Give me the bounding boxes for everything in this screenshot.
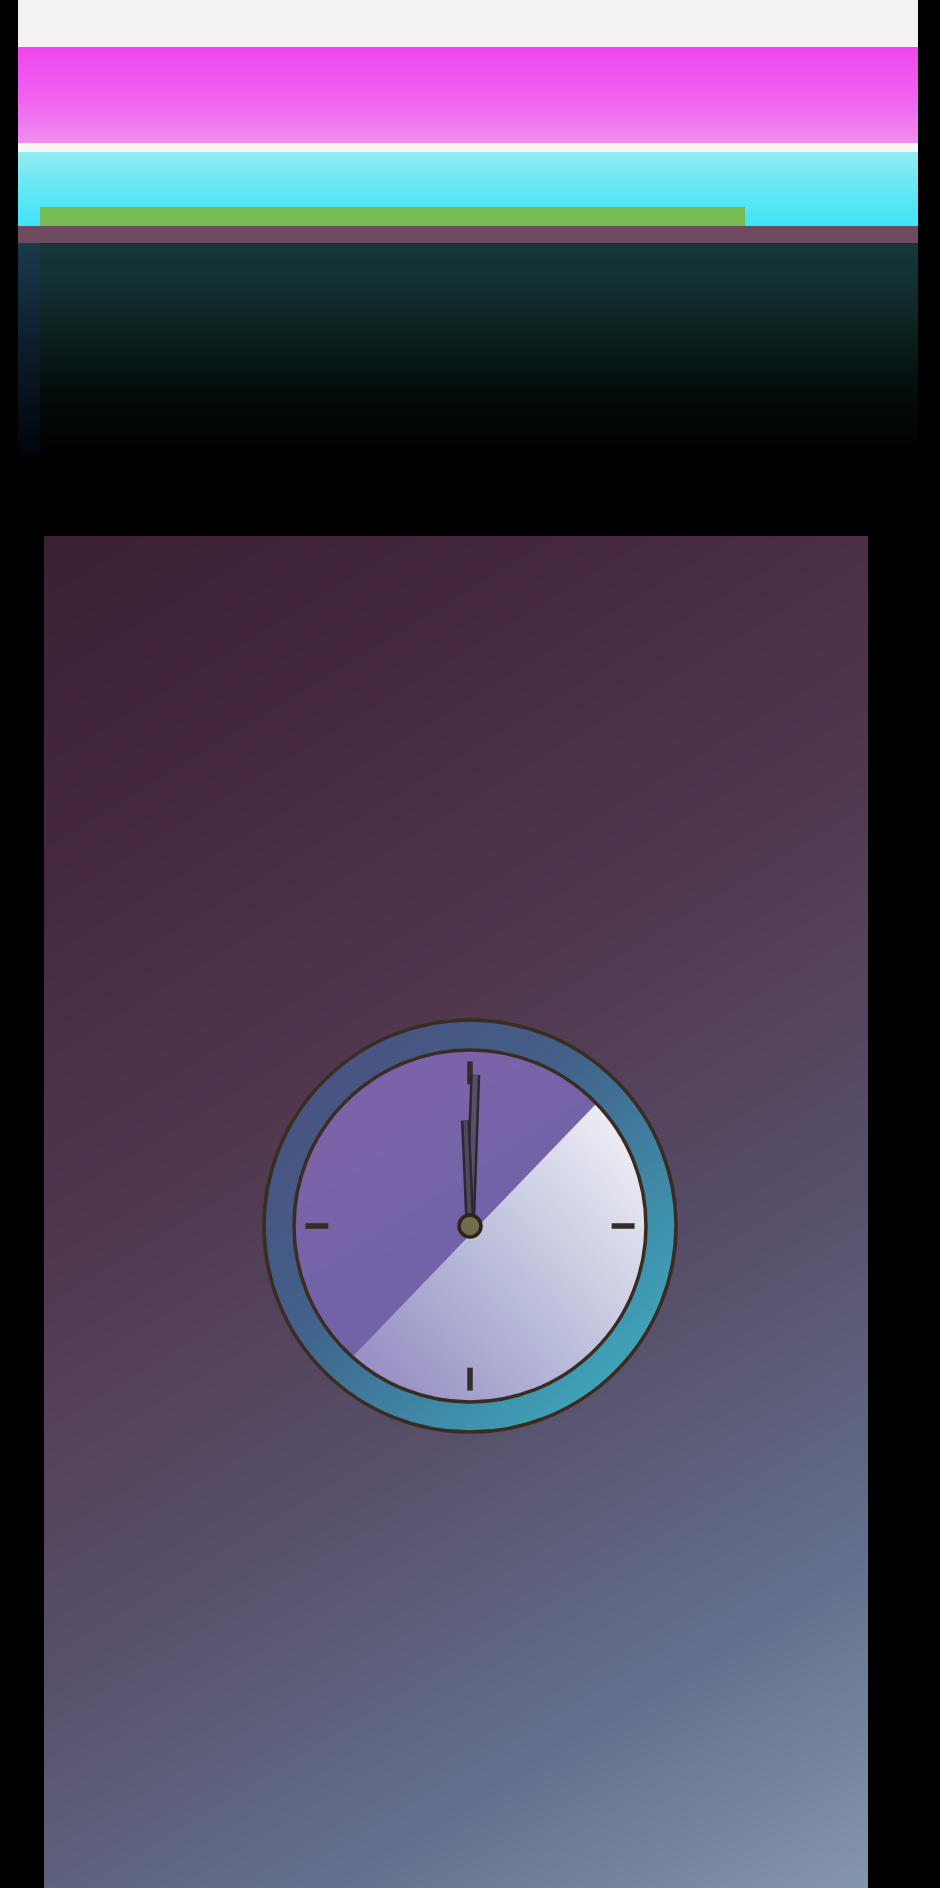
button[interactable]: Analog clock showing twelve o'clock [0, 0, 940, 1888]
button[interactable]: Colour band preview card [0, 0, 940, 1888]
